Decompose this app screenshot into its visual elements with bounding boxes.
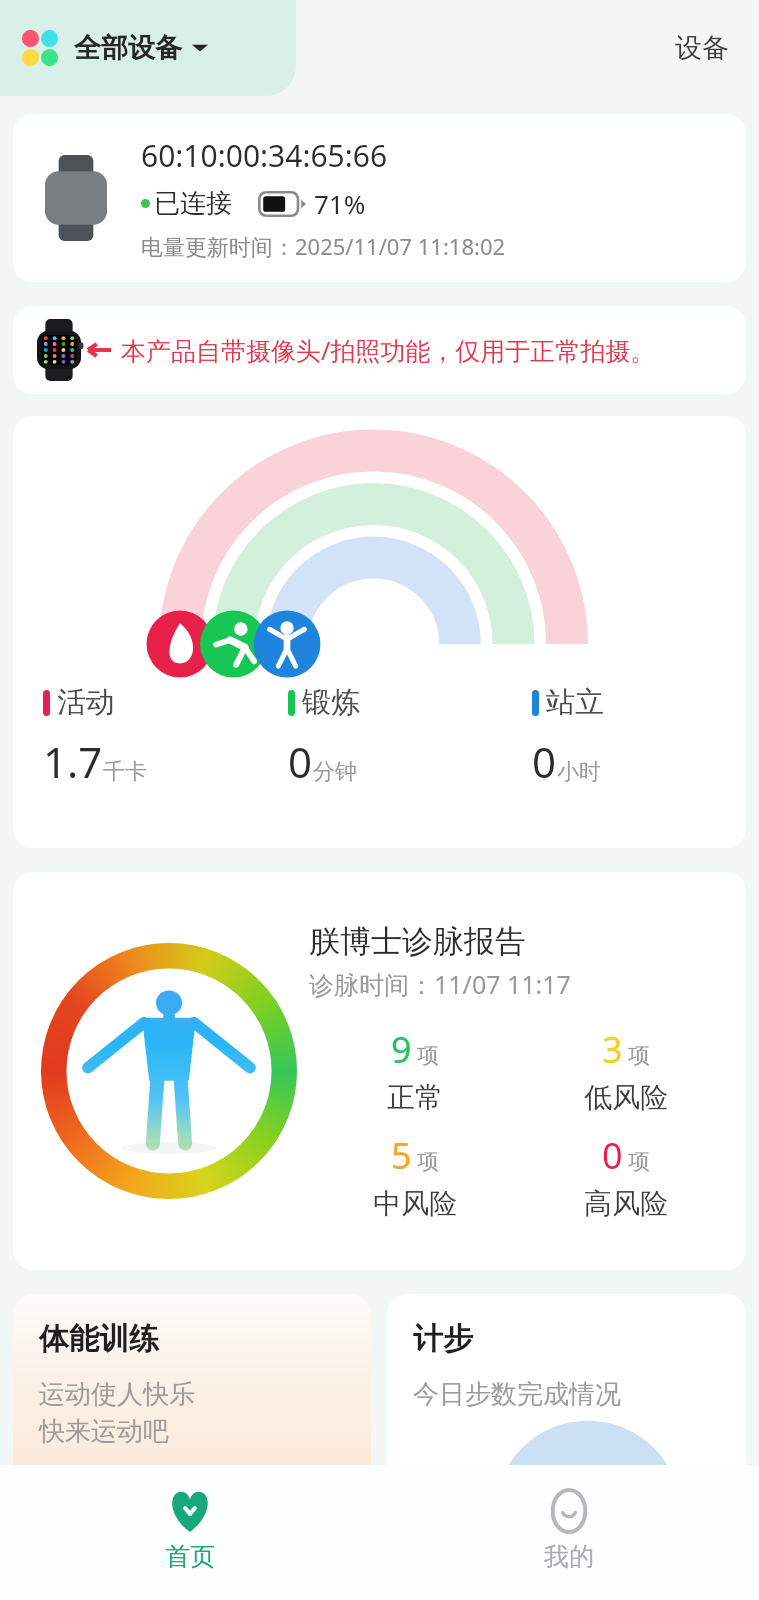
staticText: 3 <box>602 1025 623 1074</box>
button[interactable]: 活动 <box>13 416 746 848</box>
button[interactable]: 60:10:00:34:65:66 <box>13 114 746 282</box>
staticText: 千卡 <box>103 758 147 786</box>
staticText: 锻炼 <box>302 684 360 721</box>
staticText: 分钟 <box>313 758 357 786</box>
staticText: 今日步数完成情况 <box>413 1378 621 1411</box>
staticText: 正常 <box>387 1080 443 1115</box>
staticText: 0 <box>602 1131 623 1180</box>
staticText: 0 <box>288 733 313 790</box>
staticText: 1.7 <box>43 733 103 790</box>
staticText: 项 <box>417 1148 439 1176</box>
staticText: 首页 <box>165 1541 215 1572</box>
staticText: 已连接 <box>154 187 232 220</box>
staticText: 项 <box>628 1042 650 1070</box>
staticText: 60:10:00:34:65:66 <box>141 135 388 176</box>
staticText: 运动使人快乐 <box>39 1378 195 1411</box>
button[interactable]: 全部设备 <box>0 0 296 96</box>
staticText: 71% <box>314 186 366 221</box>
button[interactable]: 我的 <box>379 1465 759 1600</box>
staticText: 活动 <box>57 684 115 721</box>
staticText: 9 <box>391 1025 412 1074</box>
button[interactable]: 首页 <box>0 1465 379 1600</box>
button[interactable]: 本产品自带摄像头/拍照功能，仅用于正常拍摄。 <box>13 306 746 394</box>
staticText: 中风险 <box>373 1186 457 1221</box>
staticText: 项 <box>417 1042 439 1070</box>
staticText: 设备 <box>675 31 729 65</box>
staticText: 本产品自带摄像头/拍照功能，仅用于正常拍摄。 <box>121 333 656 367</box>
staticText: 电量更新时间：2025/11/07 11:18:02 <box>141 231 506 261</box>
button[interactable]: 朕博士诊脉报告 <box>13 872 746 1270</box>
staticText: 小时 <box>557 758 601 786</box>
staticText: 0 <box>532 733 557 790</box>
staticText: 站立 <box>546 684 604 721</box>
staticText: 高风险 <box>584 1186 668 1221</box>
staticText: 计步 <box>413 1320 473 1358</box>
button[interactable]: 设备 <box>675 31 729 65</box>
staticText: 低风险 <box>584 1080 668 1115</box>
button[interactable]: 体能训练 <box>13 1294 371 1494</box>
staticText: 我的 <box>544 1541 594 1572</box>
staticText: 全部设备 <box>74 31 182 65</box>
staticText: 快来运动吧 <box>39 1415 169 1448</box>
staticText: 项 <box>628 1148 650 1176</box>
staticText: 体能训练 <box>39 1320 159 1358</box>
staticText: 朕博士诊脉报告 <box>309 922 526 961</box>
staticText: 诊脉时间：11/07 11:17 <box>309 967 571 1001</box>
staticText: 5 <box>391 1131 412 1180</box>
button[interactable]: 计步 <box>387 1294 746 1494</box>
